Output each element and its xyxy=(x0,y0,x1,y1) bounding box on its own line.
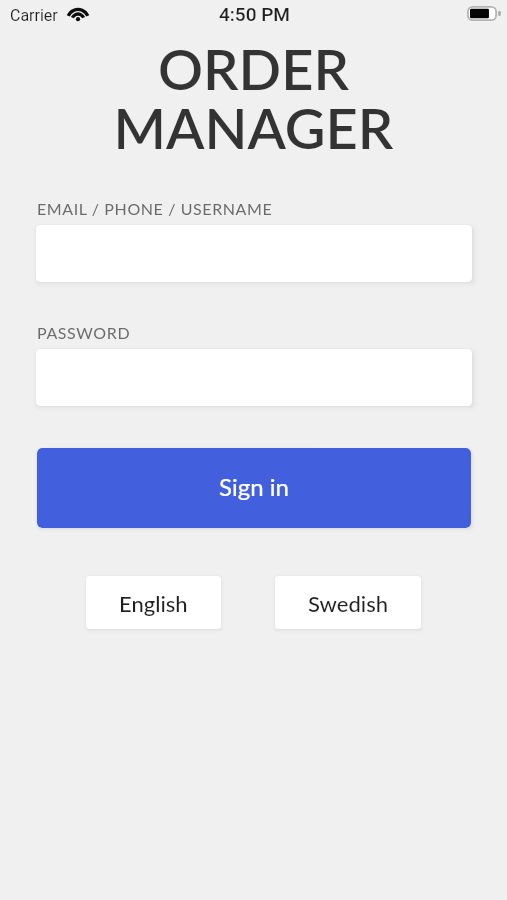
other: Battery xyxy=(466,5,500,22)
button[interactable]: Swedish xyxy=(275,576,421,629)
staticText: Carrier xyxy=(10,6,58,25)
staticText: EMAIL / PHONE / USERNAME xyxy=(37,199,273,218)
button[interactable]: English xyxy=(86,576,221,629)
staticText: English xyxy=(119,590,188,616)
staticText: Sign in xyxy=(219,472,289,501)
staticText: PASSWORD xyxy=(37,323,131,342)
staticText: Swedish xyxy=(308,590,389,616)
staticText: ORDER xyxy=(0,35,507,102)
staticText: 4:50 PM xyxy=(219,3,290,25)
staticText: MANAGER xyxy=(0,94,507,161)
button[interactable]: Sign in xyxy=(37,448,471,528)
